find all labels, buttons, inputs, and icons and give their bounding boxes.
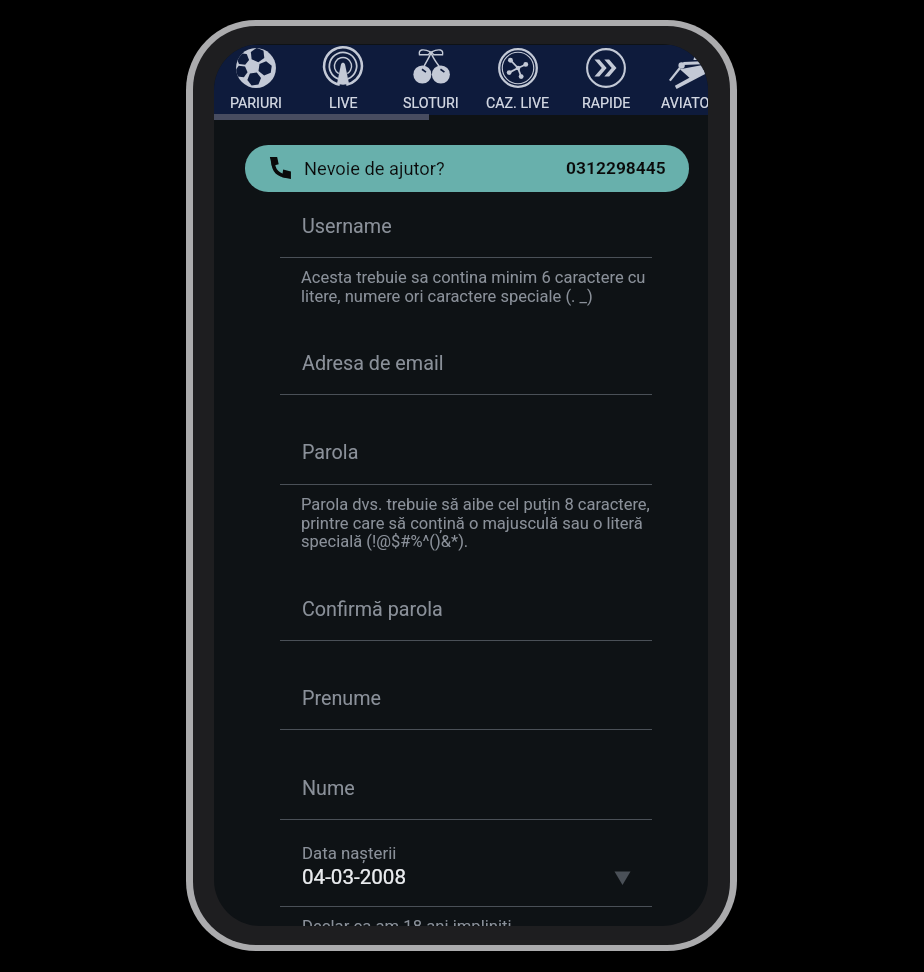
button[interactable]: Open date picker xyxy=(612,868,633,889)
button[interactable]: LIVE xyxy=(299,45,387,115)
button[interactable] xyxy=(280,680,652,730)
staticText: LIVE xyxy=(329,95,358,112)
staticText: AVIATOR xyxy=(661,95,708,112)
button[interactable] xyxy=(280,345,652,396)
staticText: Data nașterii xyxy=(302,843,397,863)
button[interactable] xyxy=(280,770,652,820)
button[interactable]: Nevoie de ajutor? xyxy=(245,145,689,192)
button[interactable]: RAPIDE xyxy=(562,45,650,115)
staticText: Declar ca am 18 ani impliniti xyxy=(302,917,512,926)
button[interactable]: AVIATOR xyxy=(646,45,708,115)
button[interactable]: SLOTURI xyxy=(387,45,475,115)
button[interactable]: PARIURI xyxy=(214,45,300,115)
staticText: Prenume xyxy=(302,687,382,710)
staticText: Username xyxy=(302,215,392,238)
staticText: Acesta trebuie sa contina minim 6 caract… xyxy=(301,268,646,306)
button[interactable] xyxy=(280,434,652,485)
staticText: Parola xyxy=(302,441,359,464)
staticText: Nume xyxy=(302,777,355,800)
staticText: CAZ. LIVE xyxy=(486,95,550,112)
staticText: 0312298445 xyxy=(566,158,666,178)
staticText: SLOTURI xyxy=(403,95,459,112)
staticText: Parola dvs. trebuie să aibe cel puțin 8 … xyxy=(301,495,650,551)
staticText: 04-03-2008 xyxy=(302,865,406,889)
button[interactable]: CAZ. LIVE xyxy=(474,45,562,115)
staticText: RAPIDE xyxy=(582,95,631,112)
staticText: Nevoie de ajutor? xyxy=(304,158,445,179)
staticText: Confirmă parola xyxy=(302,598,443,621)
button[interactable] xyxy=(280,208,652,258)
button[interactable] xyxy=(280,591,652,641)
staticText: PARIURI xyxy=(230,95,282,112)
staticText: Adresa de email xyxy=(302,352,444,375)
